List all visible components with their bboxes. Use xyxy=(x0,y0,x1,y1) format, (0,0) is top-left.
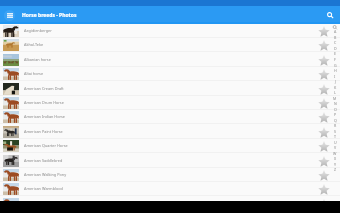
staticText: Horse breeds - Photos xyxy=(22,12,77,19)
staticText: T xyxy=(334,134,336,139)
staticText: Albanian horse xyxy=(24,57,51,62)
staticText: J xyxy=(335,79,336,84)
button[interactable]: American Quarter Horse xyxy=(0,139,340,153)
button[interactable]: Akhal-Teke xyxy=(0,38,340,52)
staticText: S xyxy=(334,129,336,134)
button[interactable]: Favorite xyxy=(317,54,330,67)
button[interactable]: American Warmblood xyxy=(0,182,340,196)
staticText: American Walking Pony xyxy=(24,172,67,177)
staticText: U xyxy=(334,140,337,145)
button[interactable]: Altai horse xyxy=(0,67,340,81)
staticText: O xyxy=(334,107,337,112)
staticText: B xyxy=(334,35,337,40)
button[interactable]: Favorite xyxy=(317,126,330,139)
staticText: Q xyxy=(334,118,337,123)
button[interactable]: Alphabet index xyxy=(330,24,340,201)
staticText: V xyxy=(334,145,337,150)
button[interactable]: Favorite xyxy=(317,83,330,96)
staticText: A xyxy=(334,29,337,34)
button[interactable]: Favorite xyxy=(317,111,330,124)
staticText: E xyxy=(334,51,336,56)
button[interactable]: Albanian horse xyxy=(0,53,340,67)
staticText: D xyxy=(334,46,337,51)
staticText: Aegidienberger xyxy=(24,28,52,33)
staticText: P xyxy=(334,112,337,117)
staticText: American Indian Horse xyxy=(24,114,66,119)
button[interactable]: American Warmblood xyxy=(0,197,340,201)
staticText: K xyxy=(334,85,337,90)
staticText: American Cream Draft xyxy=(24,86,64,91)
staticText: L xyxy=(334,90,336,95)
staticText: Z xyxy=(334,167,337,172)
staticText: American Saddlebred xyxy=(24,158,63,163)
button[interactable]: Favorite xyxy=(317,97,330,110)
staticText: H xyxy=(334,68,337,73)
button[interactable]: Favorite xyxy=(317,39,330,52)
staticText: Akhal-Teke xyxy=(24,42,44,47)
staticText: F xyxy=(334,57,336,62)
staticText: G xyxy=(334,63,337,68)
button[interactable]: Favorite xyxy=(317,183,330,196)
staticText: American Warmblood xyxy=(24,186,63,191)
button[interactable]: Favorite xyxy=(317,68,330,81)
staticText: W xyxy=(333,151,337,156)
button[interactable]: Open navigation drawer xyxy=(4,10,15,21)
button[interactable]: Search xyxy=(323,8,337,22)
button[interactable]: American Walking Pony xyxy=(0,168,340,182)
staticText: N xyxy=(334,101,337,106)
staticText: C xyxy=(334,40,337,45)
staticText: X xyxy=(334,156,337,161)
button[interactable]: Aegidienberger xyxy=(0,24,340,38)
button[interactable]: Favorite xyxy=(317,169,330,182)
button[interactable]: American Indian Horse xyxy=(0,110,340,124)
staticText: R xyxy=(334,123,337,128)
staticText: M xyxy=(333,96,337,101)
staticText: American Drum Horse xyxy=(24,100,64,105)
button[interactable]: Favorite xyxy=(317,140,330,153)
staticText: American Quarter Horse xyxy=(24,143,68,148)
staticText: Altai horse xyxy=(24,71,44,76)
button[interactable]: Favorite xyxy=(317,198,330,201)
staticText: American Paint Horse xyxy=(24,129,63,134)
staticText: Y xyxy=(334,162,337,167)
button[interactable]: American Drum Horse xyxy=(0,96,340,110)
button[interactable]: Favorite xyxy=(317,155,330,168)
button[interactable]: American Cream Draft xyxy=(0,82,340,96)
button[interactable]: American Saddlebred xyxy=(0,154,340,168)
button[interactable]: Favorite xyxy=(317,25,330,38)
staticText: I xyxy=(334,74,336,79)
button[interactable]: American Paint Horse xyxy=(0,125,340,139)
